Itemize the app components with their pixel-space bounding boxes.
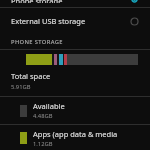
button[interactable]: Total space [0,68,150,96]
button[interactable]: Apps (app data & media content) [0,125,150,150]
staticText: 4.48GB [33,112,53,120]
staticText: External USB storage [11,16,130,26]
staticText: PHONE STORAGE [11,38,63,46]
button[interactable]: Phone storage [0,0,150,7]
staticText: Total space [11,71,51,81]
staticText: Apps (app data & media content) [33,129,144,139]
other: Phone storage selected [130,0,139,3]
staticText: Available [33,101,65,111]
button[interactable]: Available [0,97,150,124]
staticText: 1.12GB [33,140,53,146]
button[interactable]: External USB storage [0,8,150,34]
staticText: Phone storage [11,0,63,3]
staticText: 5.91GB [11,83,31,91]
